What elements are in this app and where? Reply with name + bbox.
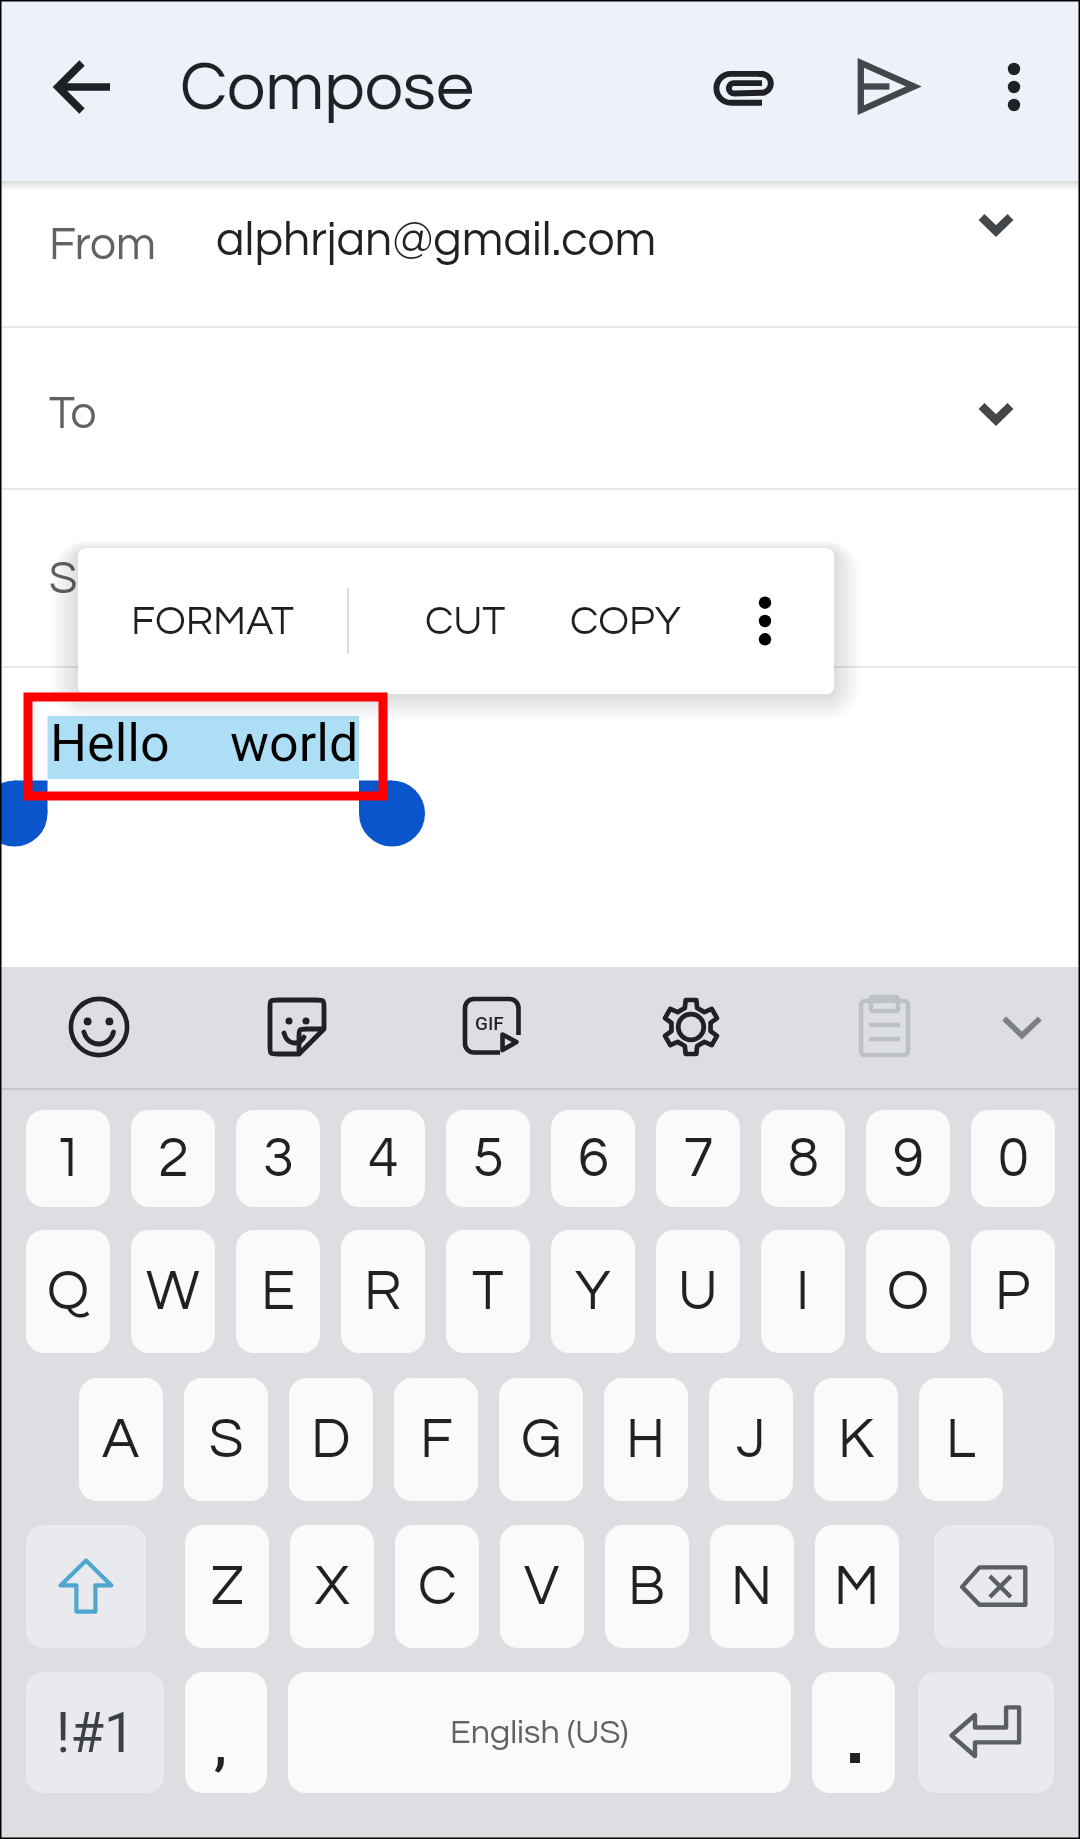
- staticText: From: [49, 221, 156, 268]
- staticText: alphrjan@gmail.com: [216, 216, 657, 265]
- button[interactable]: 1: [26, 1110, 110, 1207]
- staticText: Hello: [50, 713, 170, 774]
- button[interactable]: Shift: [26, 1525, 146, 1648]
- staticText: E: [261, 1263, 296, 1321]
- staticText: 3: [263, 1130, 294, 1188]
- staticText: 6: [578, 1130, 609, 1188]
- button[interactable]: 8: [761, 1110, 845, 1207]
- button[interactable]: L: [919, 1378, 1003, 1501]
- staticText: G: [521, 1411, 562, 1469]
- button[interactable]: U: [656, 1230, 740, 1353]
- staticText: English (US): [450, 1715, 629, 1750]
- button[interactable]: Emoji: [44, 972, 154, 1082]
- button[interactable]: From: [0, 181, 1080, 327]
- button[interactable]: A: [79, 1378, 163, 1501]
- staticText: M: [834, 1558, 880, 1616]
- button[interactable]: I: [761, 1230, 845, 1353]
- button[interactable]: P: [971, 1230, 1055, 1353]
- button[interactable]: Clipboard: [834, 972, 944, 1082]
- button[interactable]: Y: [551, 1230, 635, 1353]
- staticText: C: [418, 1558, 457, 1616]
- button[interactable]: Stickers: [242, 972, 352, 1082]
- button[interactable]: J: [709, 1378, 793, 1501]
- staticText: P: [995, 1263, 1031, 1321]
- button[interactable]: 6: [551, 1110, 635, 1207]
- button[interactable]: Backspace: [934, 1525, 1054, 1648]
- button[interactable]: 7: [656, 1110, 740, 1207]
- staticText: T: [472, 1263, 504, 1321]
- staticText: 9: [893, 1130, 924, 1188]
- button[interactable]: X: [290, 1525, 374, 1648]
- button[interactable]: ,: [185, 1672, 267, 1793]
- button[interactable]: H: [604, 1378, 688, 1501]
- button[interactable]: Settings: [636, 972, 746, 1082]
- button[interactable]: More options: [730, 548, 800, 694]
- button[interactable]: V: [500, 1525, 584, 1648]
- button[interactable]: M: [815, 1525, 899, 1648]
- button[interactable]: FORMAT: [78, 548, 347, 694]
- button[interactable]: To: [0, 328, 1080, 489]
- button[interactable]: Enter: [918, 1672, 1054, 1793]
- button[interactable]: T: [446, 1230, 530, 1353]
- staticText: B: [628, 1558, 666, 1616]
- button[interactable]: Q: [26, 1230, 110, 1353]
- staticText: N: [731, 1558, 773, 1616]
- button[interactable]: N: [710, 1525, 794, 1648]
- staticText: Y: [575, 1263, 611, 1321]
- button[interactable]: Z: [185, 1525, 269, 1648]
- button[interactable]: Send: [836, 36, 946, 146]
- button[interactable]: R: [341, 1230, 425, 1353]
- staticText: ,: [214, 1710, 227, 1778]
- button[interactable]: [812, 1672, 895, 1793]
- button[interactable]: 3: [236, 1110, 320, 1207]
- staticText: R: [364, 1263, 402, 1321]
- button[interactable]: More options: [959, 32, 1069, 142]
- button[interactable]: Subject: [0, 490, 1080, 667]
- button[interactable]: C: [395, 1525, 479, 1648]
- button[interactable]: 2: [131, 1110, 215, 1207]
- staticText: CUT: [425, 600, 506, 642]
- button[interactable]: !#1: [26, 1672, 164, 1793]
- staticText: 2: [158, 1130, 189, 1188]
- button[interactable]: 9: [866, 1110, 950, 1207]
- staticText: J: [736, 1411, 766, 1469]
- staticText: COPY: [570, 600, 681, 642]
- button[interactable]: Back: [29, 32, 139, 142]
- button[interactable]: K: [814, 1378, 898, 1501]
- staticText: I: [796, 1263, 810, 1321]
- button[interactable]: GIF: [438, 972, 548, 1082]
- button[interactable]: CUT: [367, 548, 564, 694]
- button[interactable]: COPY: [549, 548, 702, 694]
- button[interactable]: 0: [971, 1110, 1055, 1207]
- button[interactable]: Attach file: [690, 36, 800, 146]
- staticText: X: [315, 1558, 350, 1616]
- staticText: K: [838, 1411, 874, 1469]
- staticText: L: [946, 1411, 976, 1469]
- button[interactable]: W: [131, 1230, 215, 1353]
- staticText: Subject: [49, 555, 206, 602]
- button[interactable]: F: [394, 1378, 478, 1501]
- staticText: U: [678, 1263, 718, 1321]
- staticText: V: [524, 1558, 560, 1616]
- button[interactable]: E: [236, 1230, 320, 1353]
- button[interactable]: 5: [446, 1110, 530, 1207]
- staticText: A: [102, 1411, 140, 1469]
- button[interactable]: O: [866, 1230, 950, 1353]
- staticText: Compose: [180, 53, 474, 123]
- staticText: 8: [788, 1130, 819, 1188]
- button[interactable]: G: [499, 1378, 583, 1501]
- staticText: FORMAT: [131, 600, 295, 642]
- staticText: world: [230, 713, 359, 774]
- staticText: !#1: [56, 1701, 135, 1765]
- button[interactable]: B: [605, 1525, 689, 1648]
- button[interactable]: 4: [341, 1110, 425, 1207]
- staticText: D: [311, 1411, 351, 1469]
- button[interactable]: D: [289, 1378, 373, 1501]
- staticText: 1: [53, 1130, 84, 1188]
- button[interactable]: S: [184, 1378, 268, 1501]
- staticText: F: [420, 1411, 453, 1469]
- staticText: 4: [368, 1130, 399, 1188]
- button[interactable]: English (US): [288, 1672, 791, 1793]
- button[interactable]: Hide keyboard: [967, 972, 1077, 1082]
- staticText: 7: [683, 1130, 714, 1188]
